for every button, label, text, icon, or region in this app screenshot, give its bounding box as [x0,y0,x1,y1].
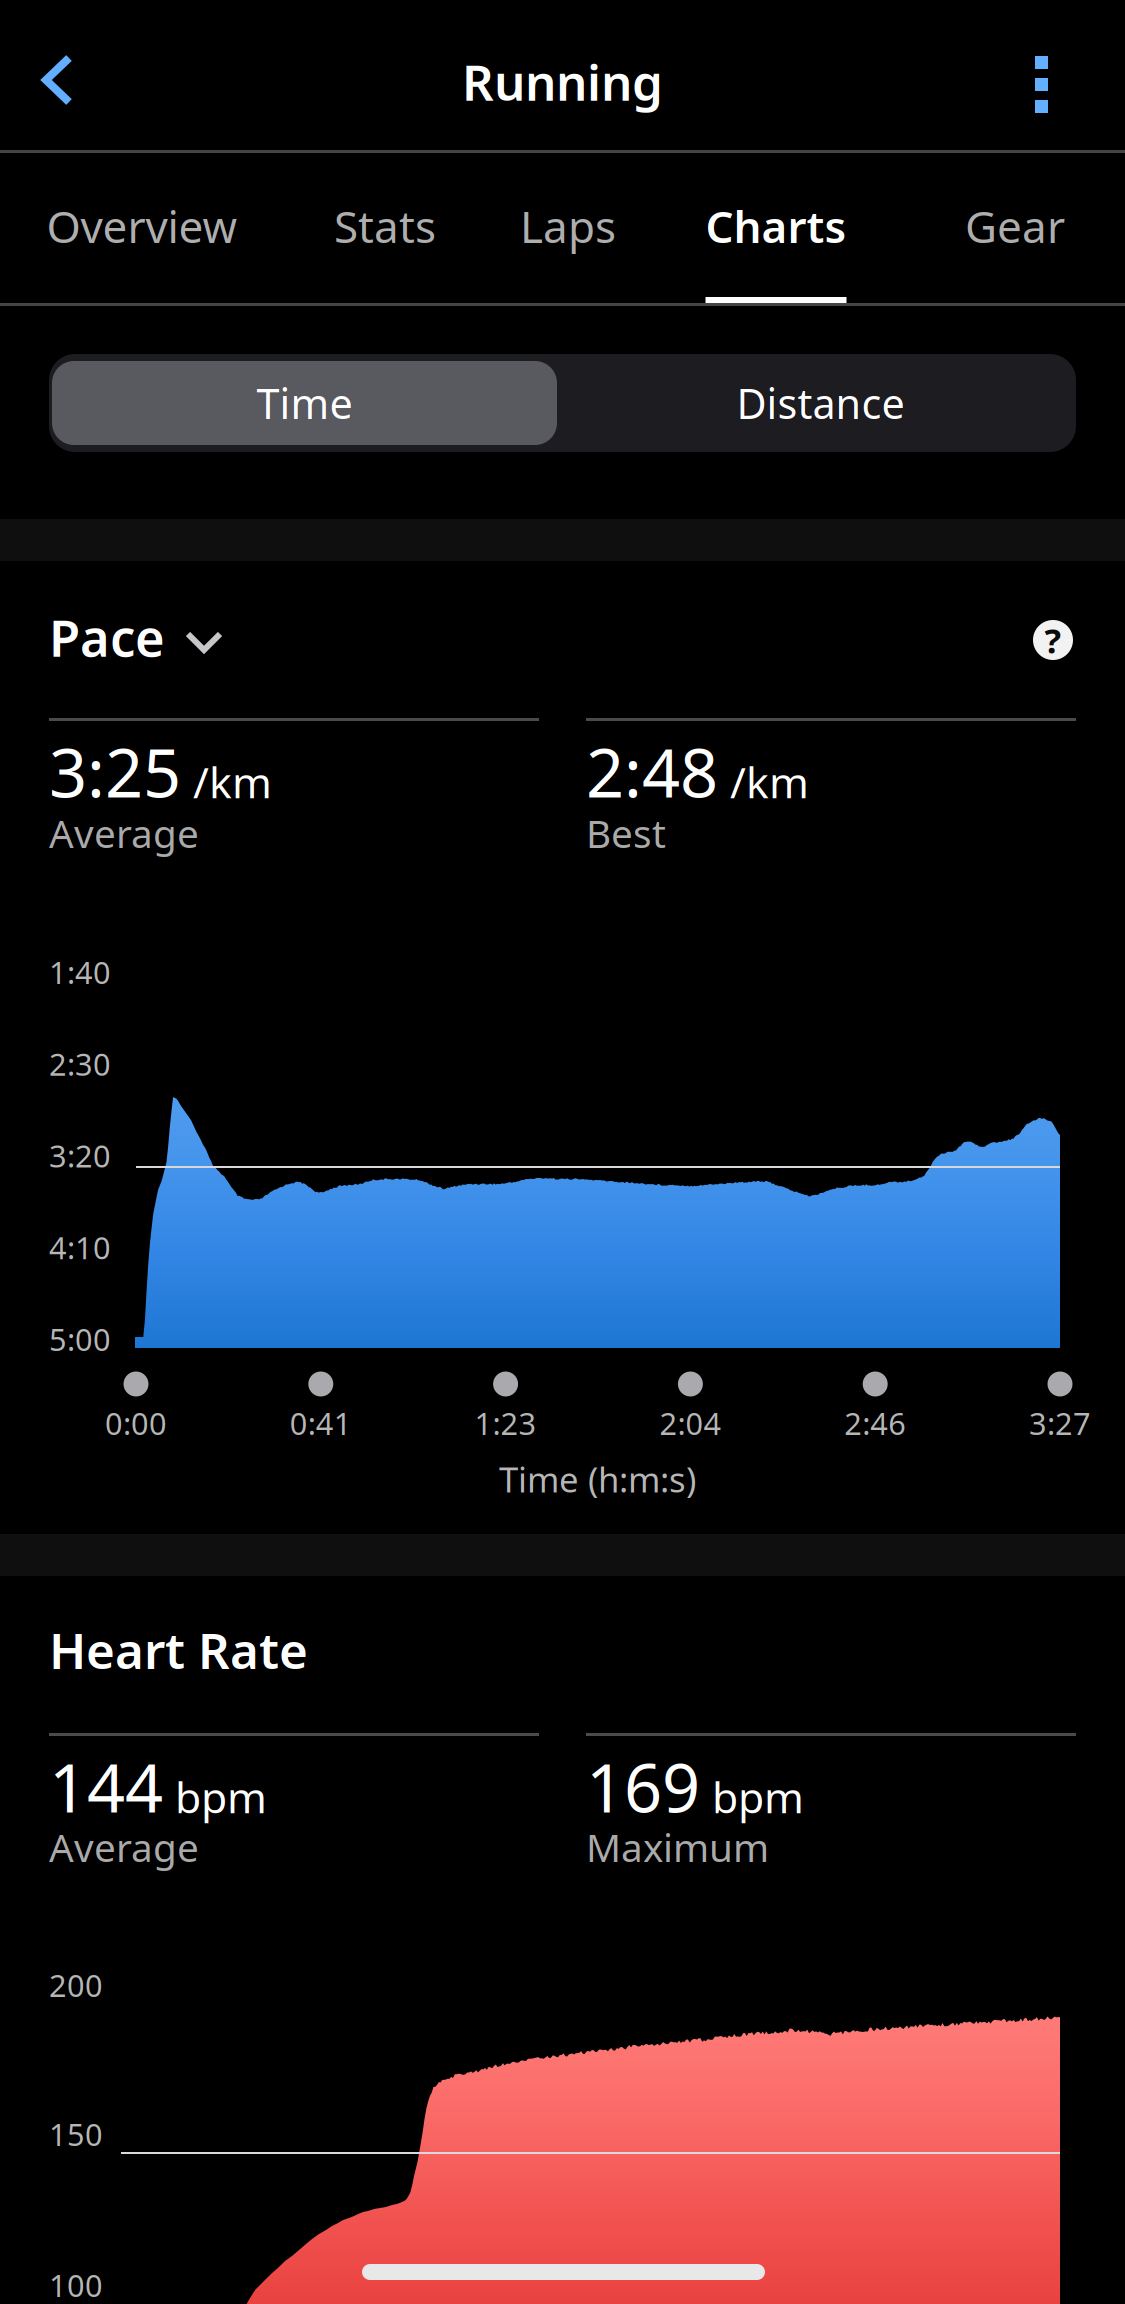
staticText: 5:00 [49,1319,111,1359]
staticText: 2:04 [659,1403,721,1443]
button[interactable]: Distance [568,361,1073,445]
staticText: Average [49,1821,199,1873]
staticText: 144 [49,1742,163,1831]
button[interactable]: Pace [49,605,549,669]
button[interactable]: Back [0,0,150,149]
button[interactable]: Gear [925,150,1105,304]
staticText: 3:27 [1029,1403,1091,1443]
staticText: Distance [736,376,904,430]
staticText: /km [730,753,809,810]
staticText: bpm [712,1768,804,1825]
button[interactable]: Help about pace [1033,620,1073,660]
staticText: Pace [49,603,165,671]
button[interactable]: Stats [290,150,480,304]
staticText: Heart Rate [49,1617,308,1682]
staticText: 1:40 [49,952,111,992]
staticText: 3:25 [49,727,181,816]
staticText: Average [49,807,199,859]
staticText: Charts [705,197,846,255]
staticText: ? [1044,617,1061,663]
staticText: 2:48 [586,727,718,816]
button[interactable]: Overview [12,150,272,304]
staticText: Laps [520,197,616,255]
staticText: Overview [46,197,237,255]
staticText: 2:46 [844,1403,906,1443]
staticText: 2:30 [49,1043,111,1084]
staticText: Best [586,807,666,859]
staticText: 1:23 [475,1403,537,1443]
staticText: Running [462,49,663,114]
staticText: 100 [49,2265,103,2304]
staticText: 3:20 [49,1135,111,1176]
button[interactable]: More options [975,0,1125,149]
button[interactable]: Laps [483,150,653,304]
staticText: Stats [334,197,436,255]
staticText: 0:00 [105,1403,167,1443]
staticText: bpm [175,1768,267,1825]
staticText: 4:10 [49,1227,111,1268]
button[interactable]: Time [52,361,557,445]
staticText: /km [193,753,272,810]
staticText: 200 [49,1965,103,2005]
staticText: Time (h:m:s) [499,1456,696,1502]
staticText: Maximum [586,1821,769,1873]
staticText: 0:41 [290,1403,352,1443]
staticText: Time [256,376,352,430]
staticText: 150 [49,2114,103,2154]
button[interactable]: Charts [676,150,876,304]
staticText: Gear [965,197,1065,255]
staticText: 169 [586,1742,700,1831]
